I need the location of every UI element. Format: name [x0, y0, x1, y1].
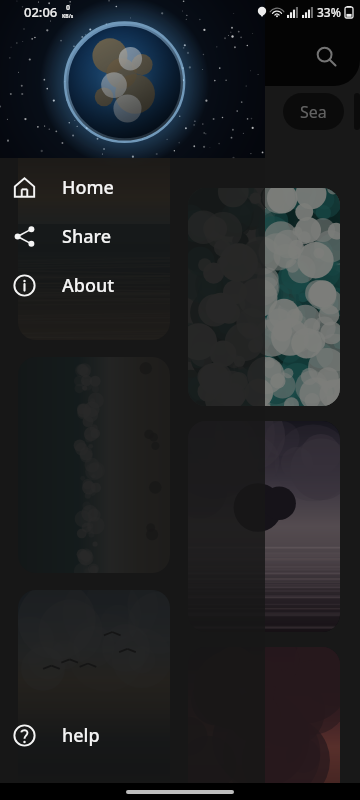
staticText: Home [62, 175, 114, 200]
button[interactable] [188, 421, 340, 632]
staticText: 33% [317, 4, 341, 20]
button[interactable]: Search [304, 34, 348, 78]
staticText: help [62, 723, 100, 748]
staticText: Share [62, 224, 112, 249]
button[interactable] [18, 357, 170, 573]
button[interactable]: About [0, 261, 265, 310]
staticText: About [62, 273, 115, 298]
button[interactable]: Share [0, 212, 265, 261]
staticText: 0 [66, 3, 71, 13]
staticText: Sea [300, 101, 327, 123]
staticText: KB/s [62, 13, 74, 20]
button[interactable]: help [0, 711, 265, 760]
staticText: 02:06 [24, 3, 58, 21]
button[interactable]: Home [0, 163, 265, 212]
button[interactable] [18, 140, 170, 340]
button[interactable] [188, 647, 340, 800]
button[interactable] [188, 188, 340, 406]
button[interactable]: Sea [283, 93, 344, 130]
button[interactable] [18, 590, 170, 800]
